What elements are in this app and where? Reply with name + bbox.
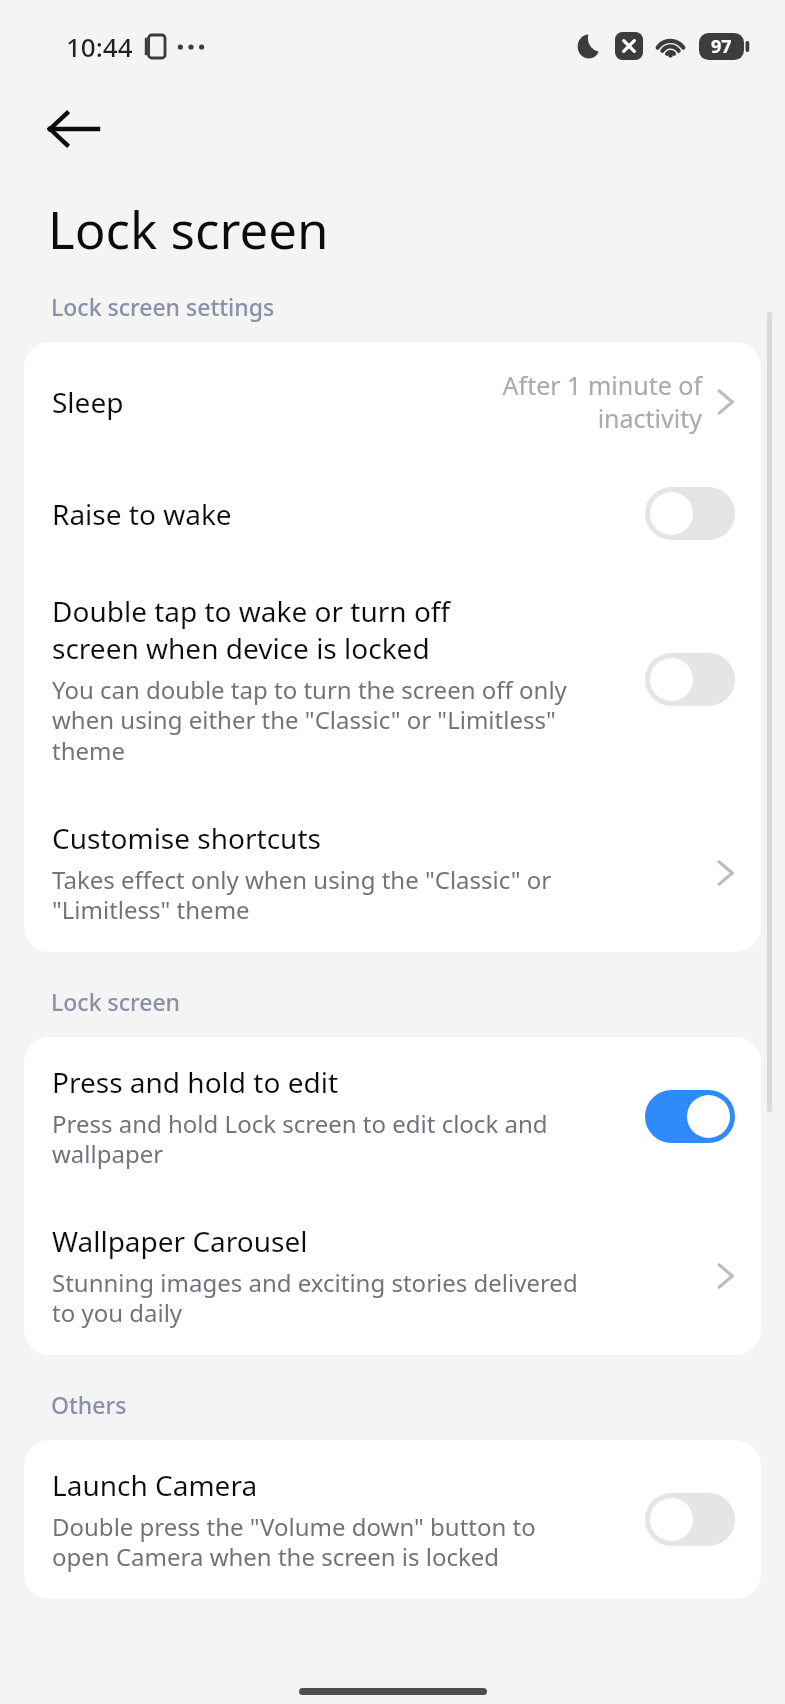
staticText: Sleep [52, 383, 124, 421]
button[interactable]: Back [36, 92, 110, 166]
button[interactable]: Raise to wake [24, 461, 761, 566]
button[interactable]: Toggle off [645, 653, 735, 706]
staticText: Lock screen settings [51, 291, 275, 322]
staticText: Customise shortcuts [52, 819, 321, 857]
staticText: 97 [711, 34, 732, 59]
staticText: Press and hold to edit [52, 1063, 338, 1101]
staticText: 10:44 [66, 29, 133, 64]
staticText: Raise to wake [52, 495, 232, 533]
staticText: Lock screen [51, 986, 181, 1017]
staticText: Takes effect only when using the "Classi… [52, 863, 552, 926]
button[interactable]: Toggle off [645, 1493, 735, 1546]
button[interactable]: Toggle off [645, 487, 735, 540]
staticText: Wallpaper Carousel [52, 1222, 308, 1260]
button[interactable]: Wallpaper Carousel [24, 1196, 761, 1355]
staticText: Press and hold Lock screen to edit clock… [52, 1107, 548, 1170]
staticText: Lock screen [48, 194, 329, 263]
staticText: Double tap to wake or turn off screen wh… [52, 592, 451, 667]
button[interactable]: Press and hold to edit [24, 1037, 761, 1196]
staticText: After 1 minute of inactivity [502, 368, 702, 435]
button[interactable]: Double tap to wake or turn off screen wh… [24, 566, 761, 793]
button[interactable]: Customise shortcuts [24, 793, 761, 952]
staticText: Stunning images and exciting stories del… [52, 1266, 578, 1329]
staticText: Double press the "Volume down" button to… [52, 1510, 536, 1573]
button[interactable]: Launch Camera [24, 1440, 761, 1599]
staticText: You can double tap to turn the screen of… [52, 673, 567, 767]
staticText: Launch Camera [52, 1466, 258, 1504]
button[interactable]: Sleep [24, 342, 761, 461]
staticText: Others [51, 1389, 127, 1420]
button[interactable]: Toggle on [645, 1090, 735, 1143]
